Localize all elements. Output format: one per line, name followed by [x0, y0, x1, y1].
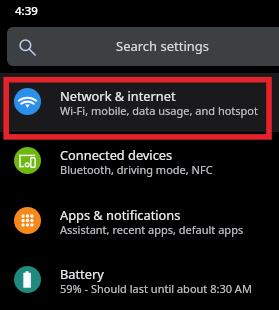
button[interactable]: Search	[7, 27, 279, 66]
staticText: Apps & notifications	[60, 206, 181, 223]
button[interactable]: Network & internet	[0, 71, 279, 131]
other: Search	[19, 39, 35, 55]
button[interactable]: Connected devices	[0, 130, 279, 190]
staticText: 59% - Should last until about 8:30 AM	[60, 281, 252, 296]
button[interactable]: Battery	[0, 249, 279, 309]
staticText: Assistant, recent apps, default apps	[60, 222, 244, 237]
staticText: Network & internet	[60, 87, 176, 104]
staticText: 4:39	[15, 3, 38, 19]
staticText: Search settings	[116, 37, 210, 55]
button[interactable]: Apps & notifications	[0, 190, 279, 250]
staticText: Connected devices	[60, 146, 173, 163]
staticText: Wi-Fi, mobile, data usage, and hotspot	[60, 103, 258, 118]
staticText: Bluetooth, driving mode, NFC	[60, 162, 213, 177]
staticText: Battery	[60, 265, 104, 282]
